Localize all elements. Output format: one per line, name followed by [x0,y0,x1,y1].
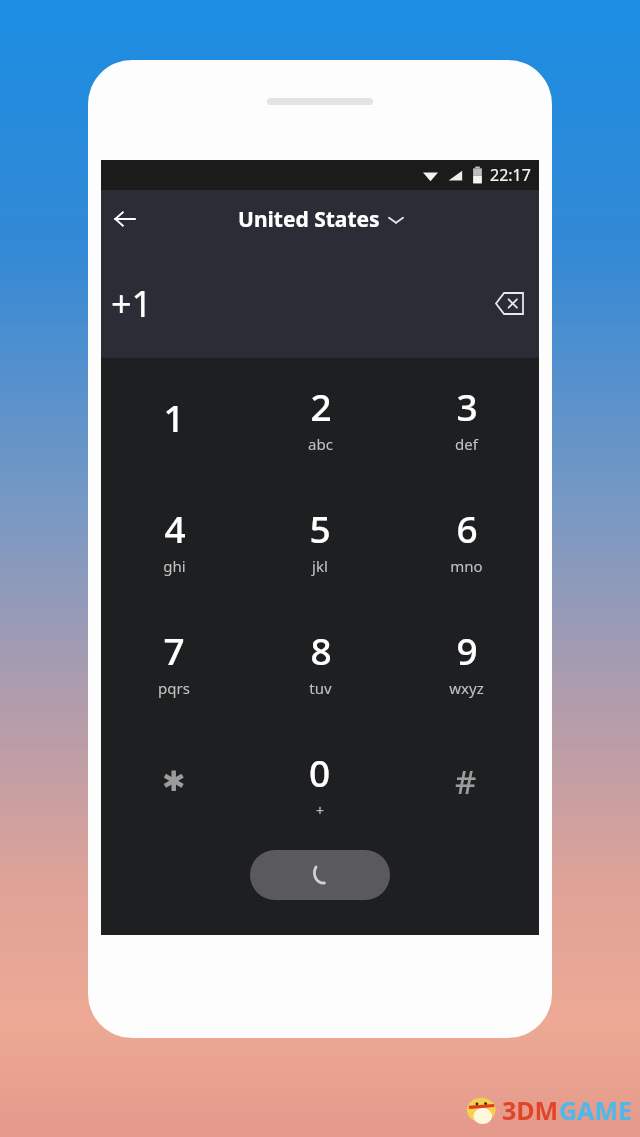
staticText: 3DM [502,1093,559,1127]
button[interactable]: Back [101,195,149,243]
staticText: 2 [310,381,332,431]
staticText: mno [450,556,483,576]
staticText: jkl [312,556,328,576]
staticText: +1 [111,279,153,328]
staticText: def [455,434,478,454]
button[interactable]: 3 [393,362,539,484]
staticText: # [455,759,477,804]
button[interactable]: 7 [101,606,247,728]
staticText: 8 [310,625,332,675]
staticText: ghi [163,556,186,576]
button[interactable]: ✱ [101,728,247,850]
button[interactable]: 2 [247,362,393,484]
staticText: ✱ [162,765,186,798]
staticText: 4 [164,503,186,553]
button[interactable]: 8 [247,606,393,728]
staticText: 0 [309,747,331,797]
staticText: 6 [456,503,478,553]
button[interactable]: 5 [247,484,393,606]
staticText: 5 [309,503,331,553]
button[interactable]: 9 [393,606,539,728]
staticText: 1 [163,392,185,442]
staticText: pqrs [158,678,190,698]
button[interactable]: 6 [393,484,539,606]
staticText: GAME [559,1093,632,1127]
staticText: 9 [456,625,478,675]
staticText: 7 [163,625,185,675]
button[interactable]: 1 [101,362,247,484]
button[interactable]: Call [250,850,390,900]
staticText: United States [238,205,380,234]
staticText: tuv [309,678,332,698]
button[interactable]: 4 [101,484,247,606]
staticText: 22:17 [490,164,531,186]
button[interactable]: United States [238,205,403,234]
staticText: 3 [456,381,478,431]
staticText: abc [308,434,333,454]
button[interactable]: # [393,728,539,850]
staticText: wxyz [449,678,484,698]
staticText: + [316,801,325,820]
button[interactable]: 0 [247,728,393,850]
button[interactable]: Backspace [487,281,531,325]
